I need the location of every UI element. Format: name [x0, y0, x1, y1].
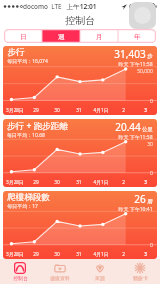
staticText: 26 [134, 192, 146, 206]
staticText: 0 [150, 170, 153, 177]
staticText: 29 [33, 251, 39, 258]
staticText: 30 [54, 251, 60, 258]
button[interactable]: 週 [42, 29, 80, 43]
staticText: 0 [150, 98, 153, 105]
staticText: 醫療卡 [133, 275, 148, 281]
staticText: 30 [54, 179, 60, 186]
staticText: 4月1日 [93, 251, 109, 258]
staticText: 3 [144, 251, 147, 258]
staticText: 50,000 [137, 68, 153, 75]
button[interactable]: 步行 [3, 46, 157, 115]
staticText: 29 [33, 107, 39, 114]
staticText: 昨天 下午10:41 [118, 206, 153, 213]
button[interactable]: 年 [118, 29, 156, 43]
staticText: 3月28日 [6, 251, 24, 258]
staticText: 4月1日 [93, 179, 109, 186]
staticText: 4月1日 [93, 107, 109, 114]
staticText: 每日平均：17 [7, 203, 38, 210]
staticText: 3月28日 [6, 107, 24, 114]
staticText: 3 [144, 107, 147, 114]
button[interactable]: 醫療卡 [120, 259, 160, 284]
staticText: 步行 [7, 47, 25, 58]
staticText: 步 [147, 53, 153, 60]
staticText: 31 [76, 251, 82, 258]
staticText: 31 [76, 107, 82, 114]
button[interactable]: AssistiveTouch [129, 2, 156, 29]
button[interactable]: 來源 [80, 259, 120, 284]
staticText: 步行 + 跑步距離 [7, 120, 68, 132]
staticText: 控制台 [13, 275, 28, 281]
staticText: 2 [122, 107, 125, 114]
staticText: 日 [20, 32, 27, 41]
staticText: 來源 [95, 275, 105, 281]
staticText: 年 [134, 32, 141, 41]
staticText: 3 [144, 179, 147, 186]
staticText: 週 [58, 32, 65, 41]
staticText: 31 [76, 179, 82, 186]
button[interactable]: 爬樓梯段數 [3, 191, 157, 259]
staticText: 健康資料 [50, 275, 70, 281]
staticText: 3月28日 [6, 179, 24, 186]
button[interactable]: 控制台 [0, 259, 40, 284]
staticText: 層 [147, 198, 153, 205]
staticText: 上午12:01 [66, 2, 97, 11]
staticText: 0 [150, 242, 153, 249]
staticText: 60% [129, 2, 142, 11]
button[interactable]: 步行 + 跑步距離 [3, 119, 157, 187]
staticText: 30 [54, 107, 60, 114]
staticText: 控制台 [65, 14, 95, 27]
staticText: 31,403 [114, 47, 146, 61]
staticText: 每日平均：10.68 [7, 132, 45, 139]
button[interactable]: 日 [4, 29, 42, 43]
staticText: 月 [96, 32, 103, 41]
staticText: 29 [33, 179, 39, 186]
staticText: 2 [122, 179, 125, 186]
staticText: 昨天 下午11:58 [118, 61, 153, 68]
staticText: 2 [122, 251, 125, 258]
button[interactable]: 健康資料 [40, 259, 80, 284]
staticText: docomo [23, 2, 48, 11]
staticText: 公里 [142, 126, 153, 133]
staticText: 30 [147, 141, 153, 148]
staticText: 昨天 下午11:58 [118, 134, 153, 141]
staticText: 20.44 [115, 120, 141, 134]
staticText: 每日平均：16,074 [7, 58, 48, 65]
button[interactable]: 月 [80, 29, 118, 43]
staticText: 爬樓梯段數 [7, 192, 50, 203]
staticText: LTE [51, 2, 62, 11]
